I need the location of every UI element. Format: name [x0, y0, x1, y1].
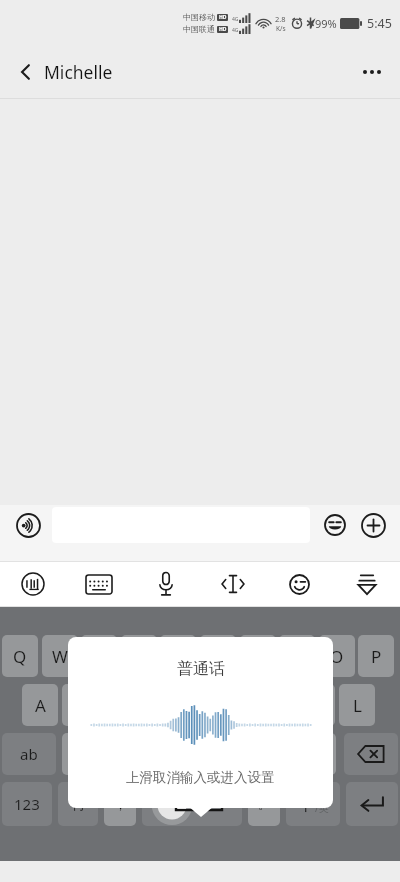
button[interactable]: Collapse keyboard [333, 562, 400, 606]
staticText: ab [20, 744, 38, 764]
staticText: Y [213, 645, 223, 668]
staticText: 2.8 [275, 14, 286, 24]
staticText: Michelle [44, 60, 113, 84]
button[interactable]: H [220, 684, 256, 726]
staticText: 123 [14, 794, 40, 814]
button[interactable]: L [339, 684, 375, 726]
button[interactable]: M [300, 733, 336, 775]
button[interactable]: C [141, 733, 177, 775]
button[interactable]: I [279, 635, 315, 677]
button[interactable]: B [220, 733, 256, 775]
button[interactable]: ab [2, 733, 56, 775]
button[interactable]: Emoticons [266, 562, 333, 606]
button[interactable]: P [358, 635, 394, 677]
staticText: 上滑取消输入或进入设置 [126, 769, 275, 786]
button[interactable]: R [121, 635, 157, 677]
button[interactable]: Key [344, 733, 398, 775]
staticText: 符 [71, 795, 86, 814]
button[interactable]: N [260, 733, 296, 775]
button[interactable]: K [299, 684, 335, 726]
button[interactable]: Voice [132, 562, 199, 606]
staticText: Q [13, 645, 27, 668]
button[interactable]: 。 [248, 782, 280, 826]
button[interactable]: Q [2, 635, 38, 677]
button[interactable]: Key [346, 782, 398, 826]
button[interactable]: G [180, 684, 216, 726]
staticText: 99% [315, 16, 337, 31]
button[interactable]: S [62, 684, 98, 726]
button[interactable]: Input method [0, 562, 66, 606]
button[interactable]: T [160, 635, 196, 677]
button[interactable]: Cursor [199, 562, 266, 606]
staticText: V [194, 743, 205, 766]
button[interactable]: More options [350, 50, 394, 94]
button[interactable]: Emoji [316, 506, 354, 544]
button[interactable]: Key [286, 782, 340, 826]
button[interactable]: Voice input [8, 505, 48, 545]
button[interactable]: W [42, 635, 78, 677]
button[interactable]: V [181, 733, 217, 775]
staticText: A [35, 694, 46, 717]
button[interactable]: Space [142, 782, 242, 826]
button[interactable]: 123 [2, 782, 52, 826]
staticText: K/s [276, 24, 286, 33]
staticText: /英 [315, 801, 329, 815]
button[interactable]: Y [200, 635, 236, 677]
button[interactable]: E [81, 635, 117, 677]
button[interactable]: More [354, 506, 392, 544]
staticText: 。 [258, 796, 271, 812]
staticText: 4G [232, 27, 239, 34]
button[interactable]: O [319, 635, 355, 677]
staticText: 5:45 [367, 15, 392, 32]
button[interactable]: ， [104, 782, 136, 826]
button[interactable]: J [260, 684, 296, 726]
button[interactable]: Keyboard [66, 562, 132, 606]
staticText: T [173, 645, 183, 668]
staticText: P [371, 645, 382, 668]
button[interactable]: X [102, 733, 138, 775]
button[interactable]: 普通话 [68, 637, 333, 808]
button[interactable]: Z [62, 733, 98, 775]
staticText: G [192, 694, 205, 717]
staticText: 中国移动 [183, 12, 215, 22]
staticText: HD [219, 14, 227, 21]
button[interactable]: D [101, 684, 137, 726]
staticText: L [353, 694, 362, 717]
staticText: ， [114, 796, 127, 812]
button[interactable]: A [22, 684, 58, 726]
button[interactable]: U [240, 635, 276, 677]
staticText: HD [219, 26, 227, 33]
button[interactable]: 符 [58, 782, 98, 826]
staticText: 中国联通 [183, 24, 215, 34]
staticText: 中 [298, 794, 315, 815]
staticText: 普通话 [177, 659, 225, 679]
staticText: W [52, 645, 68, 668]
button[interactable]: F [141, 684, 177, 726]
button[interactable]: Back [6, 52, 46, 92]
staticText: O [330, 645, 344, 668]
staticText: 4G [232, 16, 239, 23]
